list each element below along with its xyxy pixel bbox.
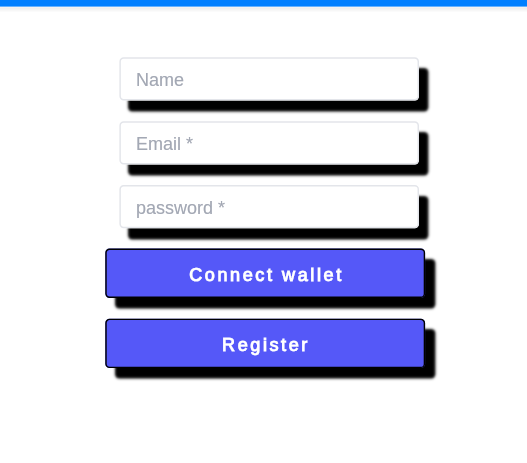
staticText: Register [222,335,310,355]
staticText: Connect wallet [189,265,344,285]
button[interactable]: Name [119,57,419,100]
button[interactable]: Email * [119,121,419,164]
button[interactable]: Connect wallet [105,249,425,298]
button[interactable]: Register [105,319,425,368]
staticText: Email * [136,134,194,154]
staticText: Name [136,70,185,90]
button[interactable]: password * [119,185,419,228]
staticText: password * [136,198,226,218]
